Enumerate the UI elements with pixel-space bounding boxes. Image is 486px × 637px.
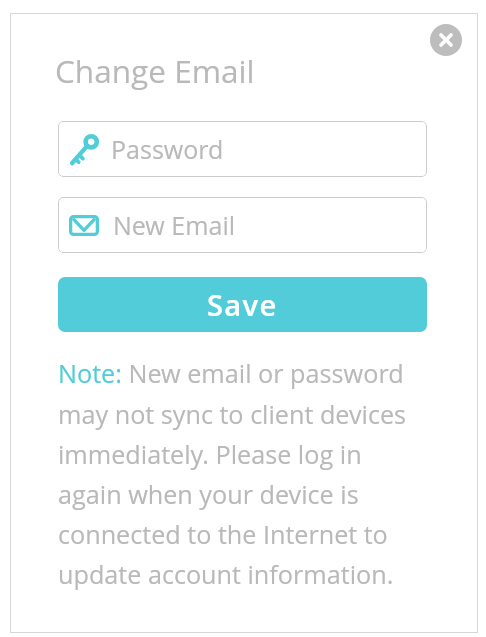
staticText: Save <box>207 285 278 324</box>
button[interactable]: Close <box>430 24 462 56</box>
button[interactable]: Save <box>58 277 427 332</box>
staticText: New Email <box>113 208 236 242</box>
staticText: Change Email <box>55 49 255 92</box>
button[interactable]: Password <box>58 121 427 177</box>
staticText: Note: New email or password may not sync… <box>58 356 414 591</box>
button[interactable]: New Email <box>58 197 427 253</box>
staticText: Password <box>111 132 224 166</box>
